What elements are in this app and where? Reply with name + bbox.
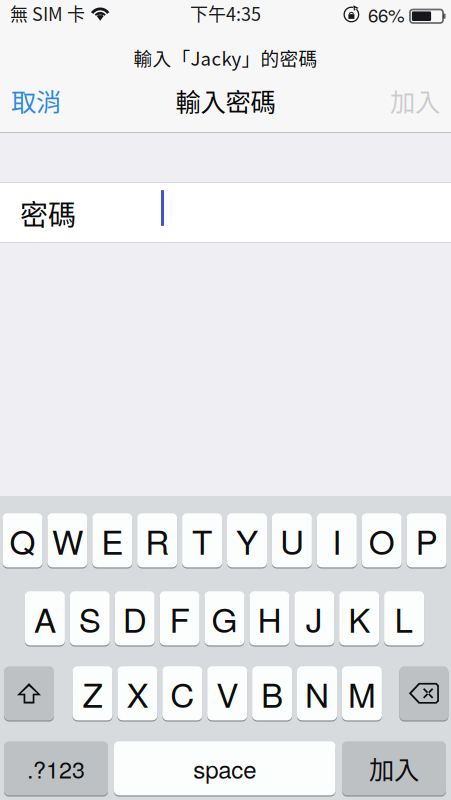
staticText: G [211, 594, 237, 642]
staticText: V [216, 669, 238, 717]
staticText: K [348, 594, 370, 642]
button[interactable]: F [160, 590, 200, 647]
button[interactable]: Delete [399, 665, 448, 722]
staticText: 取消 [11, 82, 61, 119]
button[interactable]: W [47, 512, 87, 569]
staticText: T [192, 516, 212, 564]
staticText: L [395, 594, 414, 642]
button[interactable]: K [339, 590, 379, 647]
button[interactable]: Y [227, 512, 267, 569]
staticText: I [332, 516, 341, 564]
button[interactable]: D [115, 590, 155, 647]
button[interactable]: 取消 [0, 73, 72, 128]
button[interactable]: R [137, 512, 177, 569]
staticText: P [416, 516, 438, 564]
button[interactable]: Q [2, 512, 42, 569]
staticText: .?123 [27, 752, 85, 785]
button[interactable]: T [182, 512, 222, 569]
button[interactable]: C [162, 665, 202, 722]
button[interactable]: G [204, 590, 244, 647]
button[interactable]: space [114, 740, 335, 797]
staticText: J [306, 594, 323, 642]
staticText: N [305, 669, 329, 717]
button[interactable]: U [272, 512, 312, 569]
button[interactable]: O [362, 512, 402, 569]
button[interactable]: J [294, 590, 334, 647]
staticText: 無 SIM 卡 [10, 0, 85, 26]
button[interactable]: S [70, 590, 110, 647]
staticText: 加入 [390, 82, 440, 119]
button[interactable]: E [92, 512, 132, 569]
button[interactable]: B [252, 665, 292, 722]
staticText: 輸入「Jacky」的密碼 [133, 44, 317, 71]
button[interactable]: N [297, 665, 337, 722]
button[interactable]: P [407, 512, 447, 569]
staticText: space [193, 751, 256, 785]
staticText: X [126, 669, 148, 717]
staticText: 66% [368, 1, 405, 28]
staticText: Q [9, 516, 35, 564]
button[interactable]: H [249, 590, 289, 647]
button[interactable]: V [207, 665, 247, 722]
button[interactable]: M [342, 665, 382, 722]
staticText: H [257, 594, 281, 642]
button[interactable]: 加入 [379, 73, 451, 128]
staticText: C [170, 669, 194, 717]
staticText: 加入 [369, 750, 419, 787]
button[interactable]: Shift [4, 665, 54, 722]
button[interactable]: 加入 [342, 740, 446, 797]
staticText: W [52, 516, 83, 564]
button[interactable]: Z [72, 665, 112, 722]
button[interactable]: I [317, 512, 357, 569]
staticText: A [34, 594, 56, 642]
staticText: 輸入密碼 [175, 82, 275, 119]
staticText: M [348, 669, 376, 717]
staticText: R [145, 516, 169, 564]
staticText: D [123, 594, 147, 642]
button[interactable]: X [117, 665, 157, 722]
staticText: E [101, 516, 123, 564]
staticText: 下午4:35 [190, 0, 261, 26]
staticText: S [79, 594, 101, 642]
staticText: 密碼 [20, 193, 76, 233]
staticText: Z [82, 669, 102, 717]
staticText: U [280, 516, 304, 564]
staticText: Y [236, 516, 258, 564]
staticText: B [261, 669, 283, 717]
button[interactable]: L [384, 590, 424, 647]
button[interactable]: A [25, 590, 65, 647]
staticText: F [170, 594, 190, 642]
button[interactable]: .?123 [4, 740, 108, 797]
staticText: O [369, 516, 395, 564]
